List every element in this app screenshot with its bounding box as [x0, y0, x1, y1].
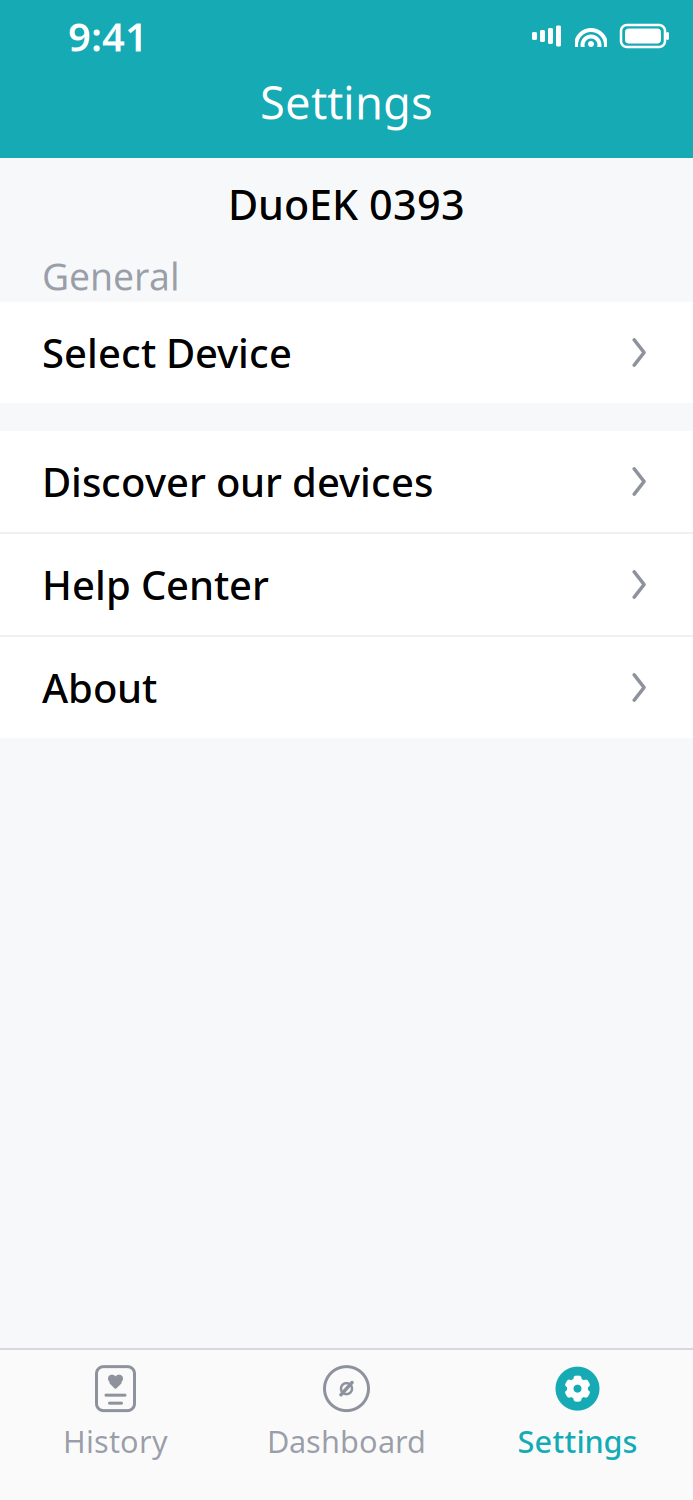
staticText: General	[42, 251, 180, 301]
button[interactable]: Settings	[462, 1364, 693, 1464]
staticText: Discover our devices	[42, 455, 433, 508]
staticText: 9:41	[68, 9, 148, 62]
staticText: Settings	[517, 1421, 637, 1461]
staticText: DuoEK 0393	[228, 177, 465, 231]
button[interactable]: Help Center	[0, 534, 693, 635]
button[interactable]: Select Device	[0, 302, 693, 403]
button[interactable]: Discover our devices	[0, 431, 693, 532]
button[interactable]: History	[0, 1364, 231, 1464]
staticText: Help Center	[42, 558, 269, 611]
staticText: History	[63, 1421, 168, 1461]
staticText: Settings	[260, 72, 433, 132]
staticText: Dashboard	[267, 1421, 426, 1461]
button[interactable]: About	[0, 637, 693, 738]
staticText: About	[42, 661, 157, 714]
staticText: Select Device	[42, 326, 292, 379]
button[interactable]: Dashboard	[231, 1364, 462, 1464]
